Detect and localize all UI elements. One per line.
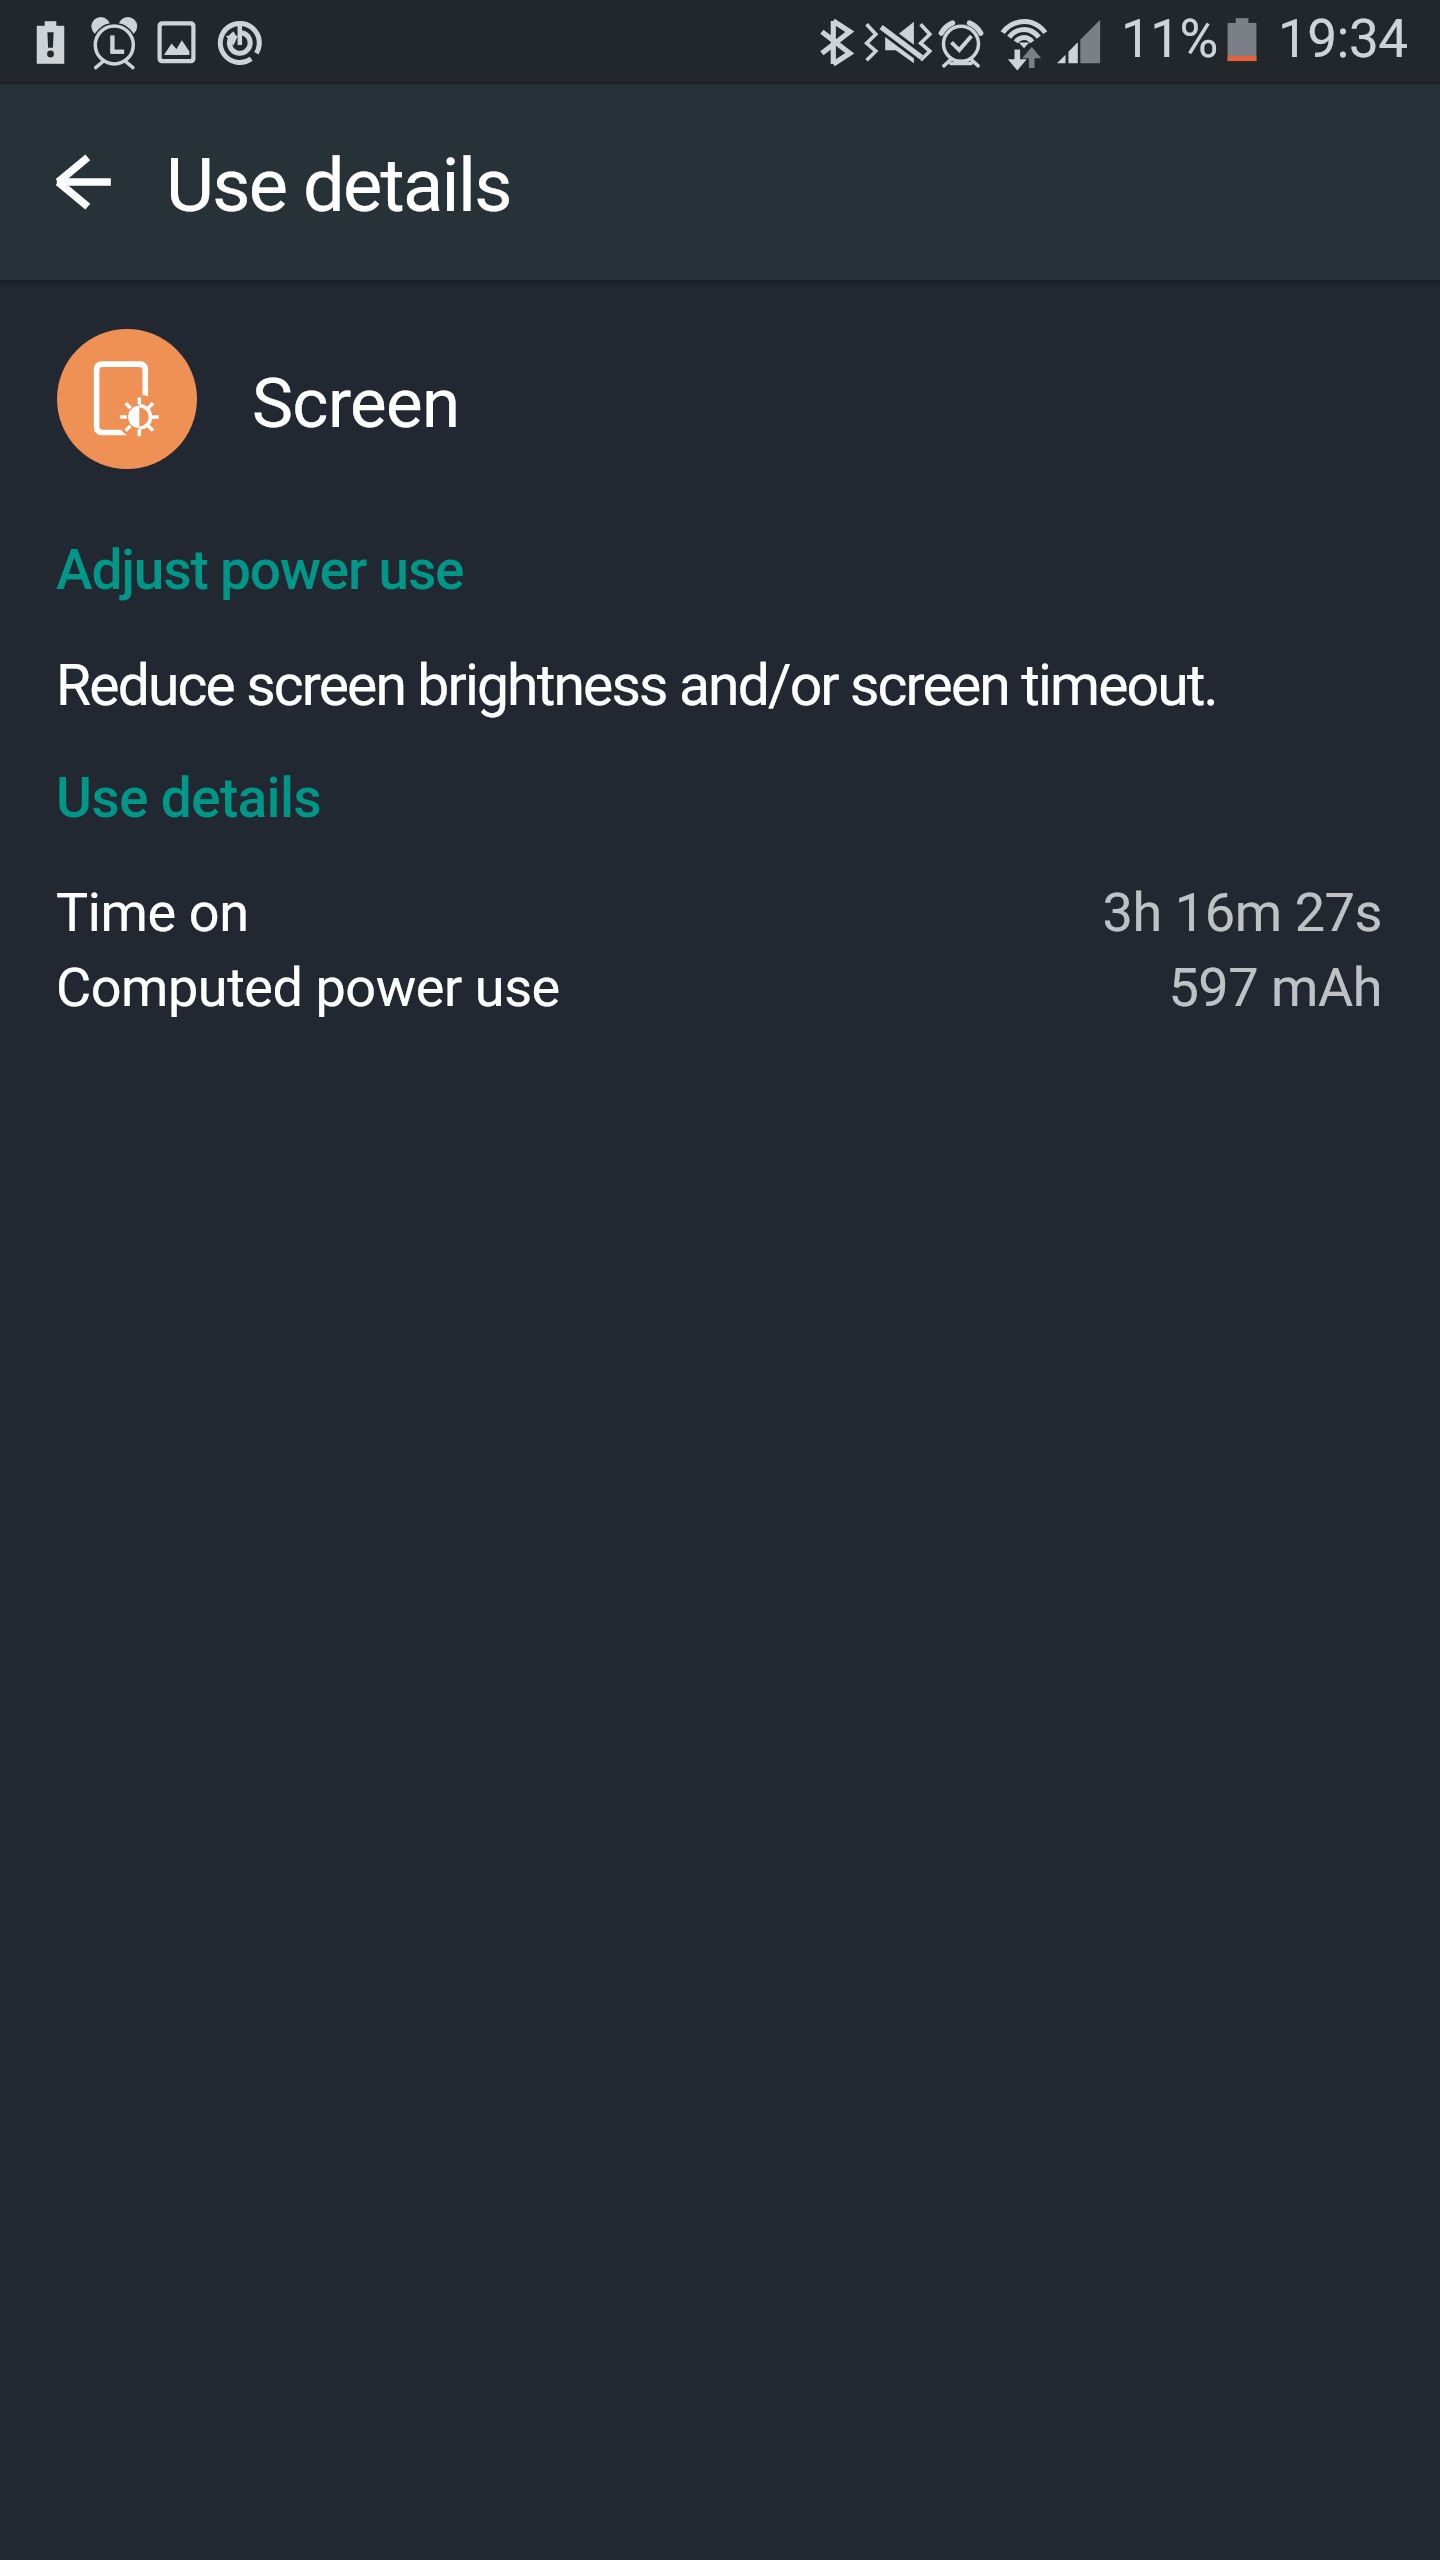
staticText: 19:34	[1278, 8, 1408, 70]
staticText: Adjust power use	[56, 538, 464, 602]
button[interactable]: Navigate up	[26, 126, 138, 238]
staticText: 11%	[1121, 8, 1218, 70]
staticText: 3h 16m 27s	[0, 881, 1382, 944]
staticText: Computed power use	[56, 956, 560, 1019]
staticText: Use details	[56, 766, 322, 830]
staticText: Reduce screen brightness and/or screen t…	[56, 652, 1217, 719]
staticText: 597 mAh	[0, 956, 1382, 1019]
staticText: Screen	[252, 363, 460, 444]
staticText: Time on	[56, 881, 249, 944]
staticText: Use details	[166, 142, 511, 229]
